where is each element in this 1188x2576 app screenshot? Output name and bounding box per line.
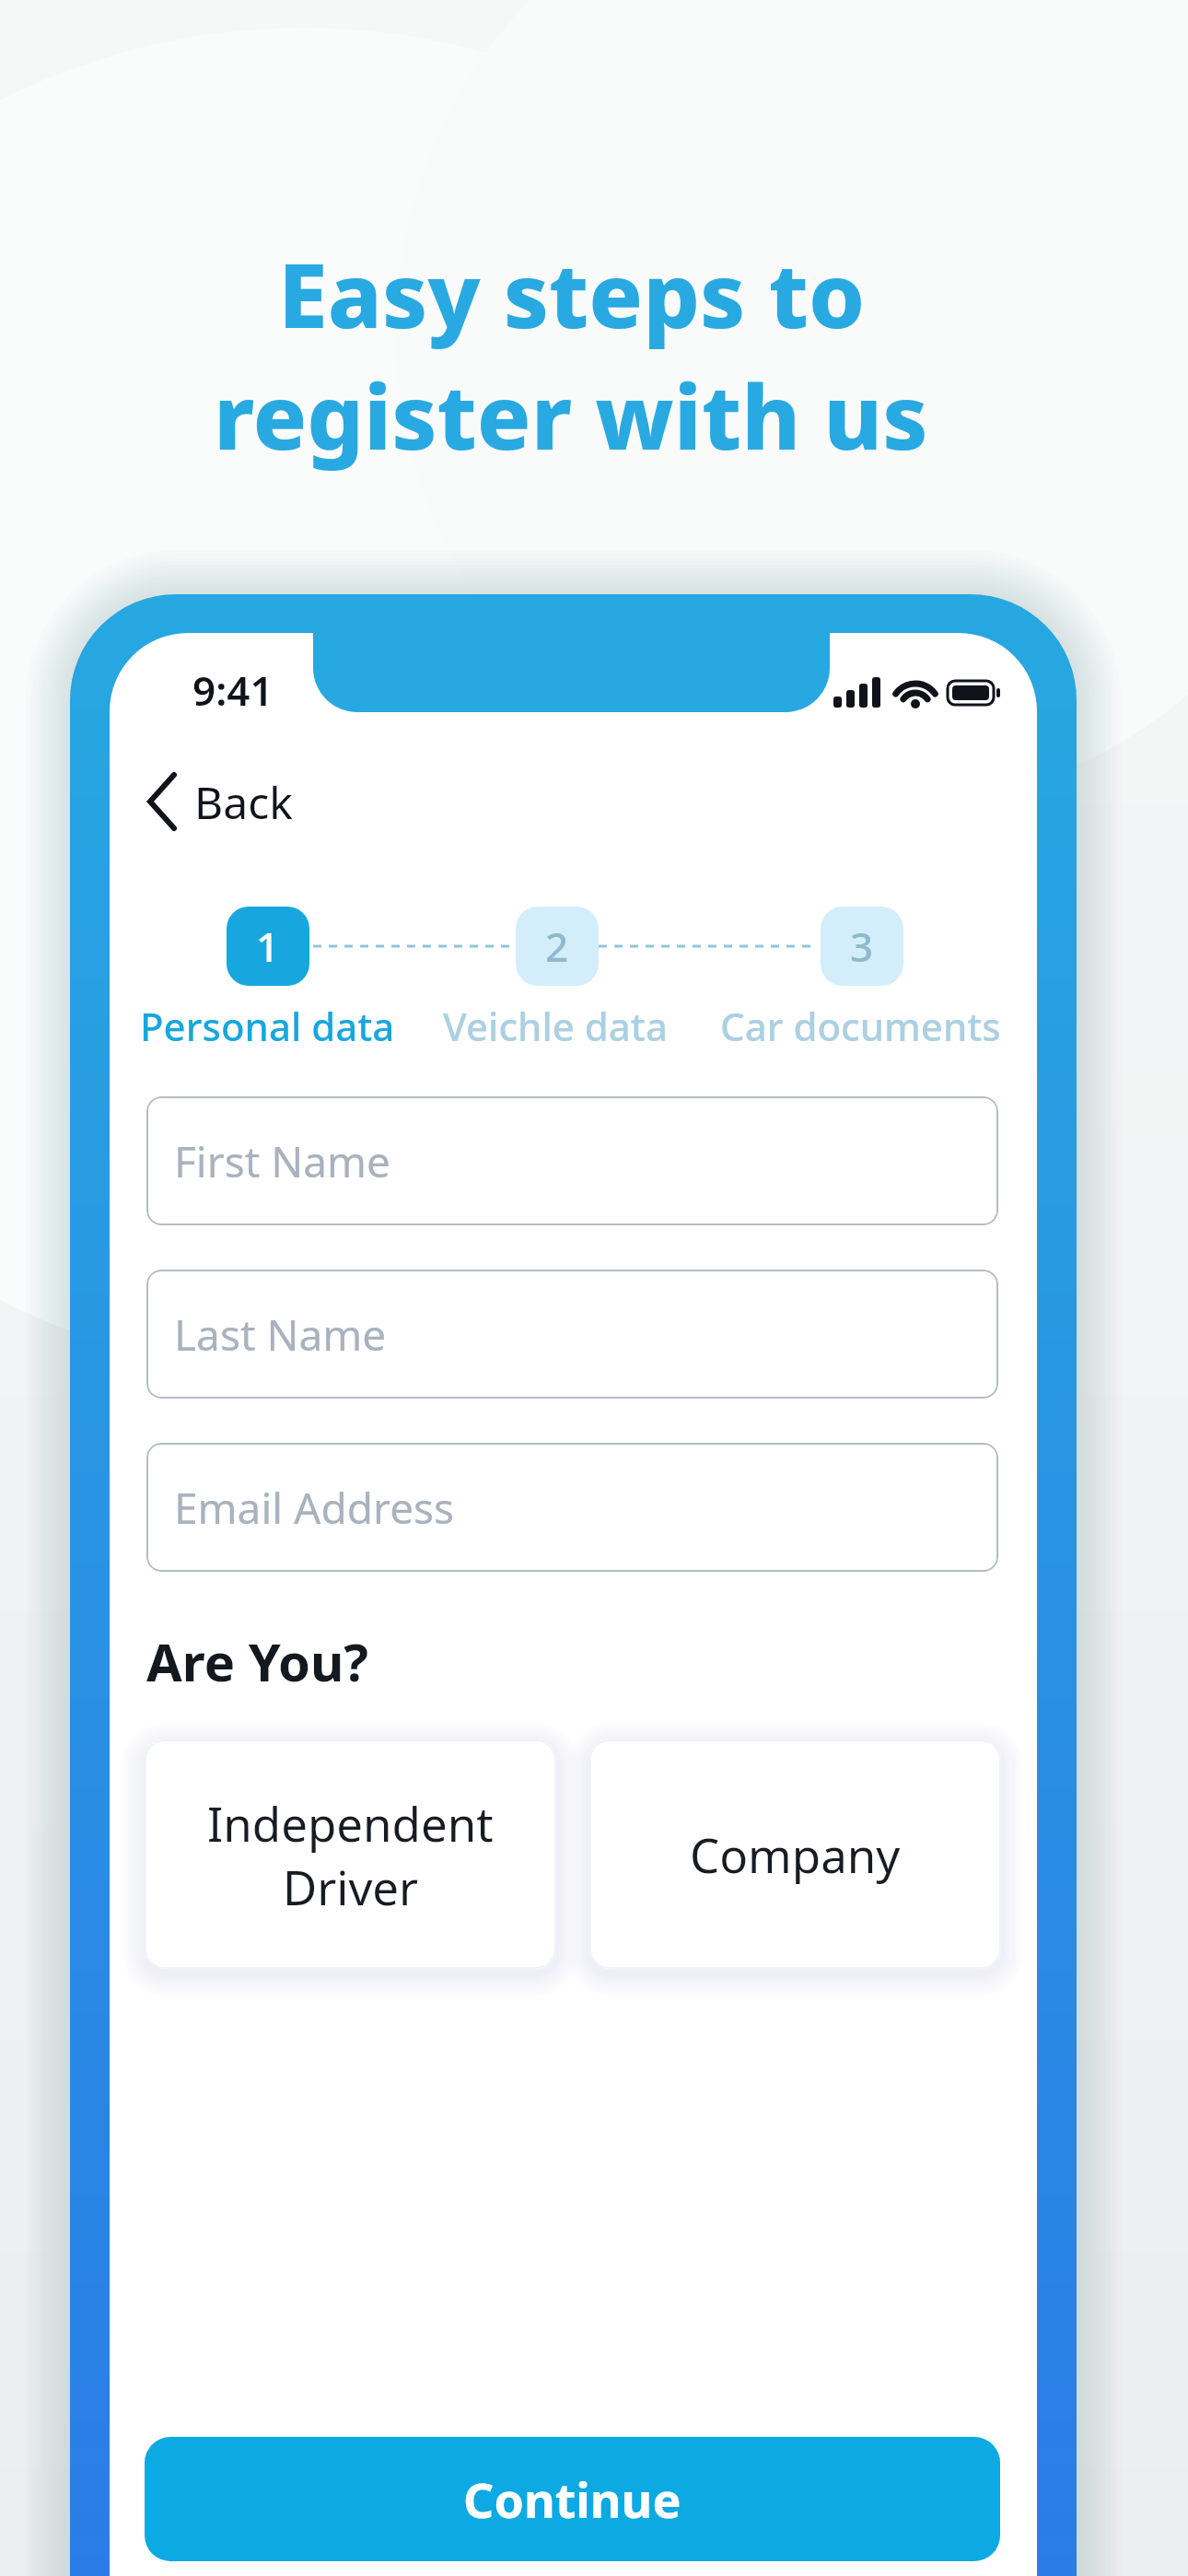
button[interactable]: First Name: [146, 1096, 998, 1225]
staticText: Company: [690, 1822, 901, 1886]
staticText: 3: [850, 919, 874, 974]
staticText: Personal data: [140, 1000, 395, 1052]
button[interactable]: Back: [146, 771, 293, 832]
button[interactable]: Email Address: [146, 1443, 998, 1572]
staticText: Continue: [463, 2466, 681, 2532]
staticText: Last Name: [174, 1306, 387, 1364]
button[interactable]: Last Name: [146, 1270, 998, 1399]
staticText: 2: [545, 919, 569, 974]
button[interactable]: Continue: [145, 2437, 1000, 2561]
staticText: register with us: [214, 354, 928, 475]
staticText: Veichle data: [443, 1000, 668, 1052]
staticText: Car documents: [720, 1000, 1001, 1052]
staticText: Back: [194, 772, 293, 832]
staticText: 9:41: [192, 662, 274, 718]
staticText: Driver: [283, 1855, 419, 1918]
button[interactable]: Company: [589, 1739, 1001, 1969]
staticText: Easy steps to: [278, 232, 865, 354]
staticText: Email Address: [174, 1479, 455, 1537]
staticText: First Name: [174, 1132, 391, 1190]
button[interactable]: Independent: [145, 1739, 556, 1969]
staticText: Are You?: [146, 1626, 369, 1696]
staticText: 1: [256, 919, 280, 974]
staticText: Independent: [207, 1791, 494, 1855]
